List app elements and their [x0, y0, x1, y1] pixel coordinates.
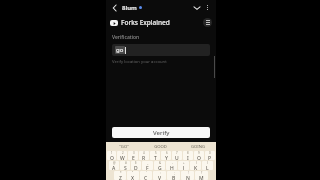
- button[interactable]: 4: [139, 151, 149, 160]
- staticText: T: [154, 155, 157, 160]
- staticText: Q: [110, 155, 114, 160]
- staticText: GOOD: [154, 144, 167, 150]
- staticText: "GO": [119, 144, 129, 150]
- staticText: 9: [198, 151, 200, 155]
- staticText: X: [131, 175, 135, 180]
- button[interactable]: Forks Explained: [106, 15, 216, 30]
- button[interactable]: 0: [205, 151, 215, 160]
- staticText: Verify: [153, 129, 170, 137]
- staticText: -: [172, 161, 173, 165]
- button[interactable]: :: [153, 171, 166, 180]
- button[interactable]: Expand: [191, 2, 202, 13]
- button[interactable]: ;: [167, 171, 180, 180]
- staticText: U: [175, 155, 179, 160]
- button[interactable]: 1: [107, 151, 116, 160]
- staticText: 8lum: [122, 4, 137, 12]
- button[interactable]: $: [131, 161, 141, 170]
- staticText: N: [186, 175, 190, 180]
- staticText: @: [113, 161, 116, 165]
- button[interactable]: ": [127, 171, 139, 180]
- staticText: GOING: [191, 144, 205, 150]
- staticText: $: [135, 161, 137, 165]
- staticText: ': [146, 171, 147, 175]
- staticText: K: [194, 165, 198, 170]
- staticText: 5: [155, 151, 157, 155]
- staticText: &: [159, 161, 162, 165]
- staticText: 1: [111, 151, 113, 155]
- staticText: R: [142, 155, 146, 160]
- staticText: Verify location your account: [112, 59, 167, 65]
- staticText: *: [120, 171, 122, 175]
- button[interactable]: Back: [109, 2, 120, 13]
- button[interactable]: _: [142, 161, 153, 170]
- staticText: M: [199, 175, 204, 180]
- button[interactable]: &: [154, 161, 165, 170]
- button[interactable]: 9: [194, 151, 204, 160]
- staticText: 3: [133, 151, 135, 155]
- button[interactable]: #: [120, 161, 130, 170]
- staticText: Forks Explained: [121, 18, 170, 27]
- button[interactable]: GOING: [179, 142, 216, 151]
- button[interactable]: *: [114, 171, 126, 180]
- button[interactable]: -: [166, 161, 177, 170]
- staticText: S: [124, 165, 127, 170]
- button[interactable]: (: [190, 161, 201, 170]
- button[interactable]: go: [112, 44, 210, 56]
- staticText: G: [158, 165, 162, 170]
- staticText: D: [134, 165, 138, 170]
- staticText: H: [170, 165, 174, 170]
- staticText: 4: [143, 151, 145, 155]
- staticText: J: [183, 165, 185, 170]
- staticText: +: [183, 161, 185, 165]
- staticText: Z: [119, 175, 122, 180]
- staticText: B: [172, 175, 176, 180]
- button[interactable]: 7: [172, 151, 182, 160]
- staticText: I: [187, 155, 189, 160]
- button[interactable]: @: [109, 161, 119, 170]
- staticText: C: [144, 175, 148, 180]
- staticText: Y: [165, 155, 168, 160]
- staticText: 8: [187, 151, 189, 155]
- staticText: ): [207, 161, 208, 165]
- staticText: 6: [166, 151, 168, 155]
- staticText: ": [132, 171, 134, 175]
- staticText: 7: [176, 151, 178, 155]
- staticText: 0: [209, 151, 211, 155]
- staticText: O: [197, 155, 201, 160]
- staticText: #: [125, 161, 127, 165]
- staticText: W: [120, 155, 125, 160]
- staticText: (: [196, 161, 197, 165]
- staticText: E: [132, 155, 135, 160]
- staticText: Verification: [112, 34, 140, 41]
- button[interactable]: 2: [117, 151, 127, 160]
- button[interactable]: More options: [202, 2, 213, 13]
- button[interactable]: "GO": [106, 142, 142, 151]
- button[interactable]: 3: [128, 151, 138, 160]
- staticText: :: [160, 171, 161, 175]
- staticText: ;: [174, 171, 175, 175]
- staticText: ?: [201, 171, 203, 175]
- staticText: go: [116, 46, 124, 54]
- staticText: 2: [122, 151, 124, 155]
- staticText: L: [206, 165, 209, 170]
- staticText: F: [146, 165, 149, 170]
- staticText: _: [147, 161, 149, 165]
- button[interactable]: ?: [195, 171, 208, 180]
- button[interactable]: ': [140, 171, 152, 180]
- button[interactable]: !: [181, 171, 194, 180]
- button[interactable]: 5: [150, 151, 160, 160]
- button[interactable]: 8: [183, 151, 193, 160]
- button[interactable]: GOOD: [142, 142, 179, 151]
- button[interactable]: +: [178, 161, 189, 170]
- staticText: A: [112, 165, 116, 170]
- button[interactable]: 6: [161, 151, 171, 160]
- staticText: V: [158, 175, 162, 180]
- staticText: P: [208, 155, 212, 160]
- staticText: !: [188, 171, 189, 175]
- button[interactable]: Verify: [112, 127, 210, 138]
- button[interactable]: Menu: [203, 18, 212, 27]
- button[interactable]: ): [202, 161, 213, 170]
